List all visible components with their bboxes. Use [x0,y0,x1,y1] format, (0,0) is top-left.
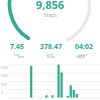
staticText: km [6,54,36,59]
staticText: Steps [44,12,57,19]
staticText: 0 [1,91,3,95]
staticText: 時間 [66,54,96,59]
staticText: 9,856 [36,0,65,12]
staticText: kcal [47,52,54,57]
staticText: 7.45 [10,42,24,52]
button[interactable]: 378.47 [34,42,67,57]
staticText: 500 [1,83,7,87]
button[interactable]: 04:02 [67,42,100,57]
staticText: 1500 [1,66,9,70]
staticText: kcal [36,54,66,59]
button[interactable]: 9,856 [0,0,100,19]
staticText: 1000 [1,74,9,78]
staticText: 04:02 [75,42,93,52]
button[interactable]: 7.45 [0,42,34,57]
staticText: km [14,52,20,57]
staticText: 378.47 [40,42,62,52]
staticText: time [80,52,88,57]
